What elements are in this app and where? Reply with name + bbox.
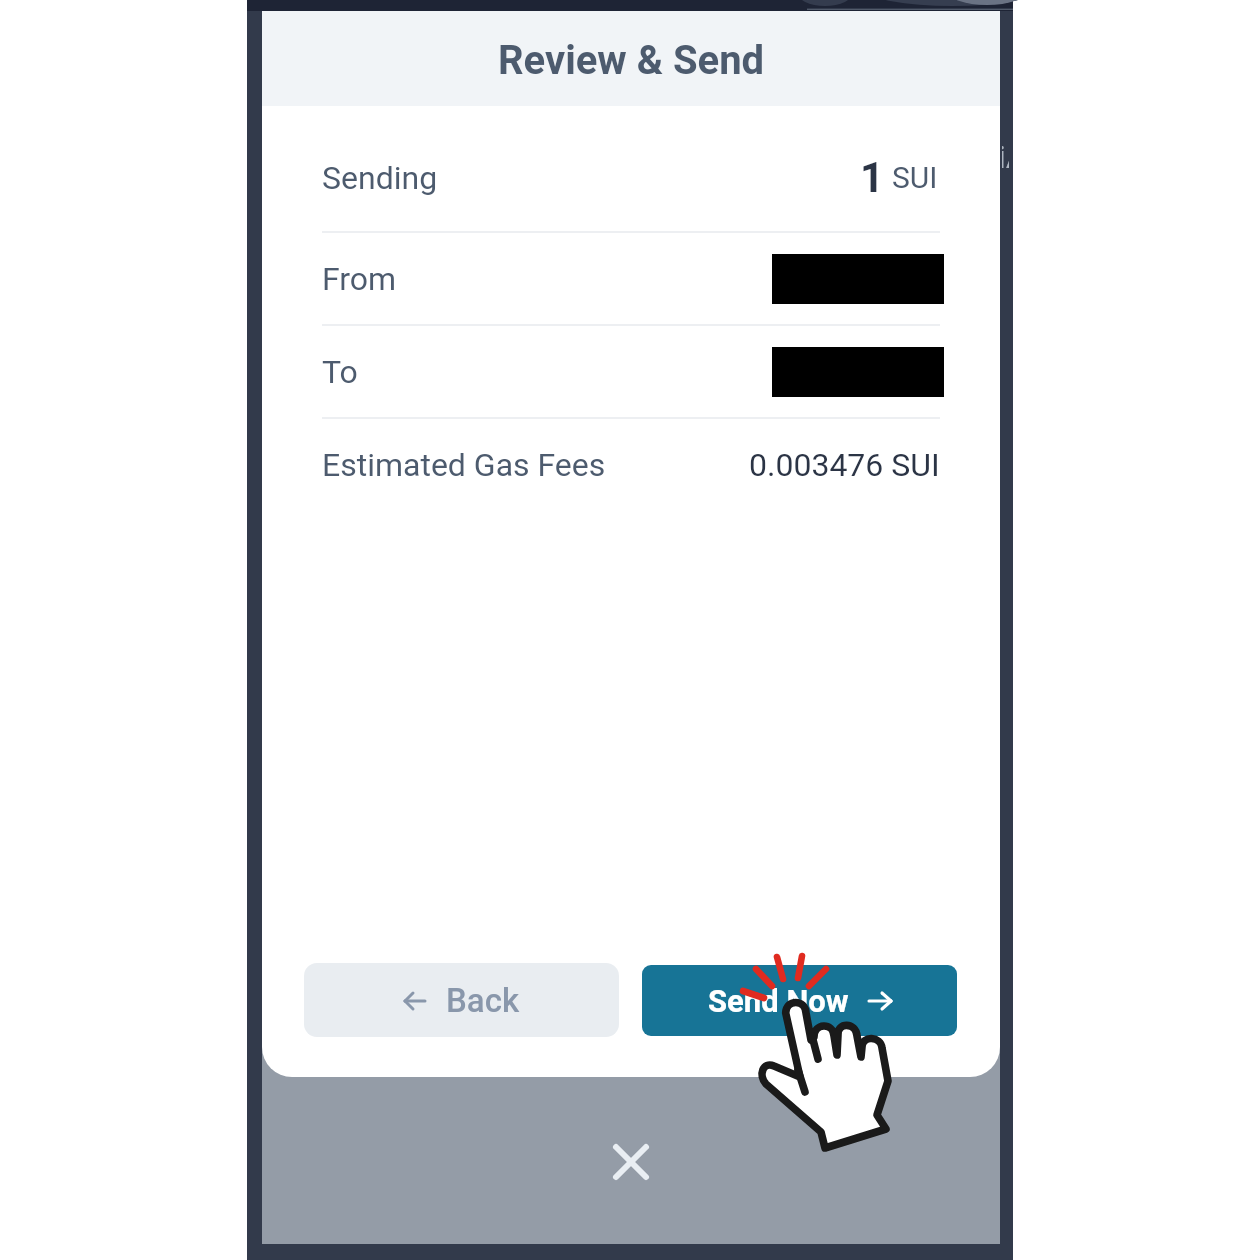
staticText: To (322, 353, 358, 391)
staticText: Estimated Gas Fees (322, 446, 606, 484)
staticText: SUI (892, 160, 938, 195)
button[interactable]: Back (304, 963, 619, 1037)
staticText: Send Now (708, 983, 849, 1019)
staticText: 0.003476 SUI (749, 446, 940, 484)
staticText: From (322, 260, 397, 298)
staticText: iA (1002, 142, 1009, 169)
button[interactable]: Close (589, 1120, 673, 1204)
button[interactable]: Send Now (642, 965, 957, 1036)
staticText: 1 (860, 153, 885, 202)
staticText: Review & Send (498, 37, 765, 84)
staticText: Sending (322, 159, 438, 197)
staticText: Back (446, 981, 520, 1020)
